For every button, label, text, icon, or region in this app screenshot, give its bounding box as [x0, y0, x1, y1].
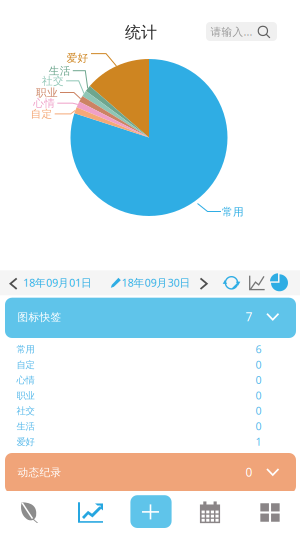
- button[interactable]: 职业: [0, 388, 300, 403]
- staticText: 0: [255, 357, 261, 372]
- button[interactable]: Previous: [4, 272, 23, 295]
- button[interactable]: 18年09月30日: [121, 275, 192, 289]
- button[interactable]: 常用: [0, 341, 300, 357]
- button[interactable]: 生活: [0, 418, 300, 434]
- button[interactable]: Next: [194, 272, 213, 295]
- button[interactable]: Line chart: [244, 270, 269, 295]
- staticText: 7: [245, 309, 252, 325]
- staticText: 自定: [30, 107, 52, 120]
- button[interactable]: 18年09月01日: [23, 275, 94, 289]
- button[interactable]: 自定: [0, 357, 300, 372]
- staticText: 18年09月30日: [121, 275, 190, 290]
- button[interactable]: Search: [206, 22, 277, 41]
- staticText: 6: [255, 342, 261, 356]
- staticText: 自定: [16, 359, 34, 371]
- button[interactable]: More: [242, 491, 298, 533]
- staticText: 生活: [49, 64, 71, 77]
- button[interactable]: 爱好: [0, 434, 300, 449]
- staticText: 18年09月01日: [23, 275, 92, 290]
- staticText: 0: [245, 464, 252, 480]
- button[interactable]: Refresh: [219, 270, 244, 295]
- button[interactable]: Calendar: [182, 491, 238, 533]
- staticText: 0: [255, 404, 261, 418]
- staticText: 心情: [33, 97, 55, 110]
- button[interactable]: 心情: [0, 372, 300, 388]
- staticText: 生活: [16, 421, 34, 432]
- staticText: 0: [255, 419, 261, 433]
- staticText: 0: [255, 388, 261, 402]
- staticText: 请输入...: [210, 24, 252, 39]
- button[interactable]: 社交: [0, 403, 300, 418]
- staticText: 社交: [16, 405, 34, 417]
- staticText: 社交: [42, 74, 64, 87]
- button[interactable]: Plants: [2, 491, 58, 533]
- staticText: 1: [255, 434, 261, 449]
- staticText: 爱好: [66, 51, 88, 64]
- staticText: 爱好: [16, 436, 34, 448]
- staticText: 职业: [16, 390, 34, 401]
- staticText: 常用: [16, 344, 34, 355]
- button[interactable]: Statistics: [62, 491, 118, 533]
- button[interactable]: 图标快签: [5, 298, 296, 338]
- staticText: 动态纪录: [17, 466, 61, 479]
- button[interactable]: Pie chart: [267, 270, 292, 295]
- staticText: 职业: [36, 86, 58, 99]
- staticText: 统计: [125, 23, 157, 42]
- staticText: 心情: [16, 374, 34, 386]
- button[interactable]: Add entry: [130, 495, 172, 528]
- staticText: 0: [255, 373, 261, 387]
- staticText: 常用: [222, 205, 244, 218]
- button[interactable]: 动态纪录: [5, 453, 296, 493]
- staticText: 图标快签: [17, 311, 61, 324]
